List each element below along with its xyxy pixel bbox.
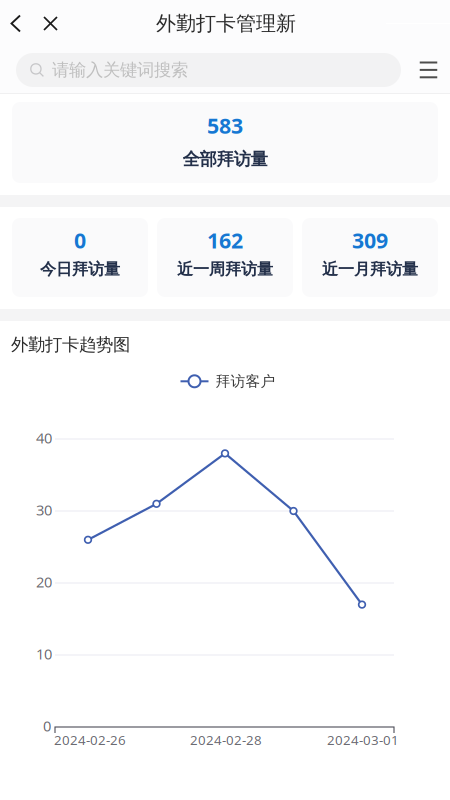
staticText: 今日拜访量 [40,259,120,279]
staticText: 2024-02-26 [54,731,126,749]
staticText: 20 [36,572,52,591]
button[interactable]: 0 [12,218,148,297]
staticText: 2024-03-01 [327,731,399,749]
staticText: 40 [36,428,52,447]
staticText: 外勤打卡趋势图 [11,334,130,355]
staticText: 全部拜访量 [182,148,267,170]
staticText: 近一月拜访量 [322,259,418,279]
button[interactable]: 583 [12,102,438,183]
staticText: 30 [36,500,52,519]
button[interactable]: Close [32,0,66,47]
staticText: 2024-02-28 [190,731,262,749]
staticText: 拜访客户 [215,372,275,390]
button[interactable]: Menu [401,48,448,92]
staticText: 309 [352,226,388,254]
staticText: 162 [207,226,243,254]
staticText: 外勤打卡管理新 [156,11,296,36]
staticText: 请输入关键词搜索 [52,59,188,81]
staticText: 583 [207,111,243,139]
staticText: 近一周拜访量 [177,259,273,279]
staticText: 0 [43,716,51,735]
button[interactable]: 309 [302,218,438,297]
button[interactable]: 162 [157,218,293,297]
staticText: 0 [74,226,86,254]
staticText: 10 [36,644,52,663]
button[interactable]: Back [0,0,32,47]
